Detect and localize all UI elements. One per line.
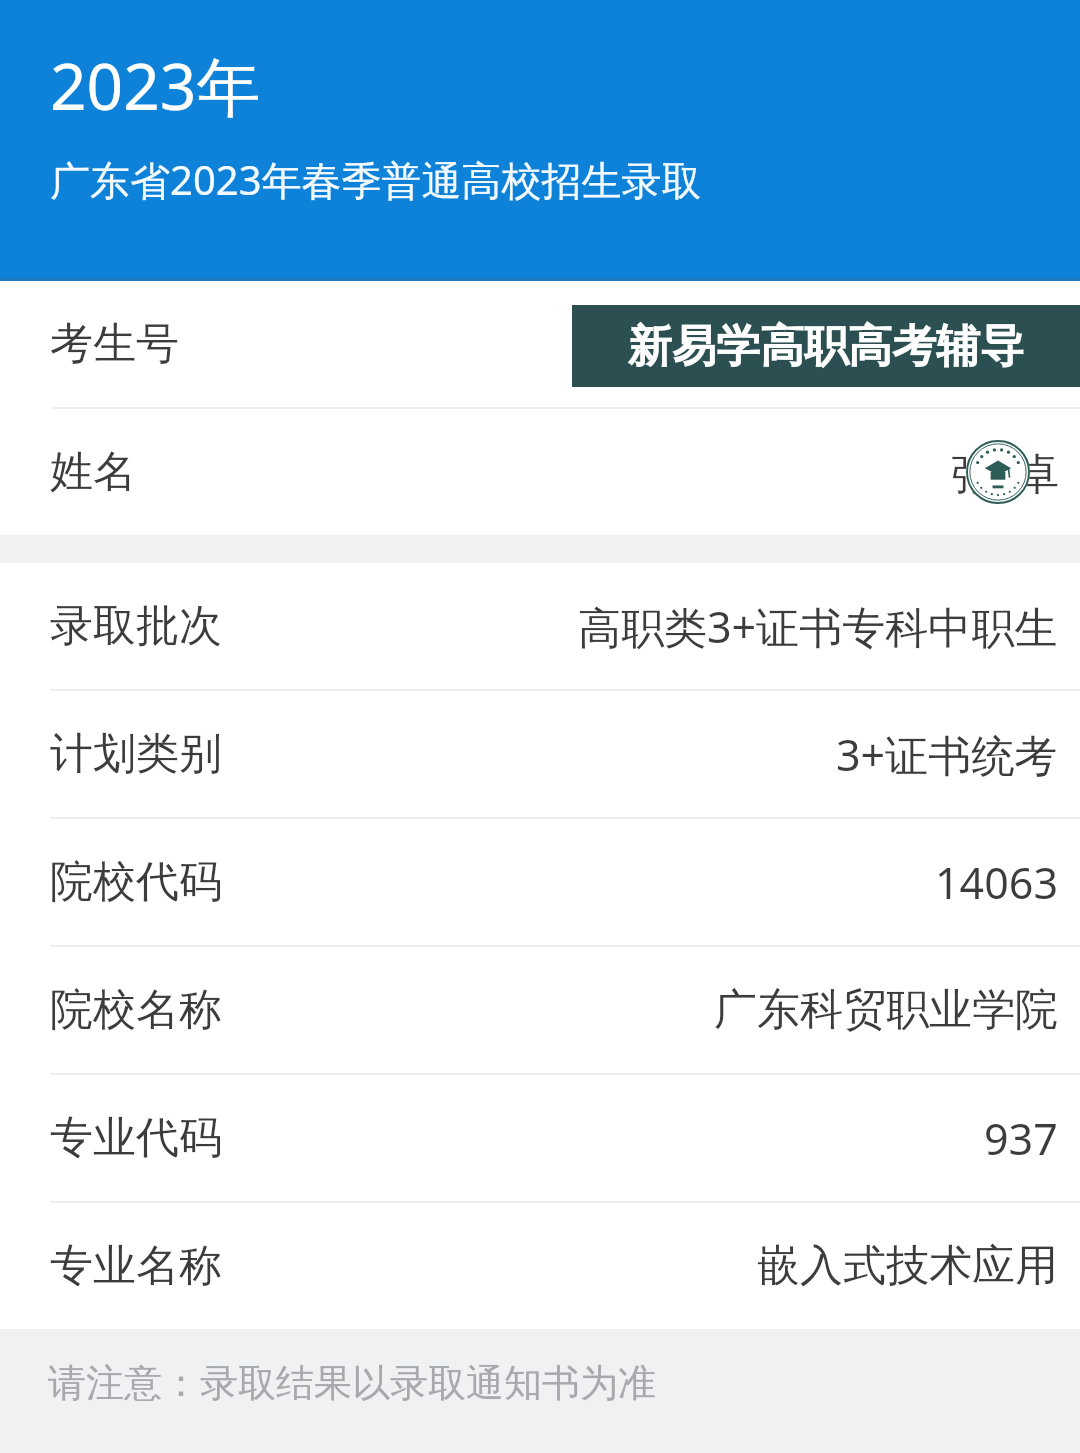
- other: School seal: [966, 440, 1030, 504]
- button[interactable]: 院校名称: [0, 947, 1080, 1073]
- staticText: 张 卓: [951, 443, 1060, 502]
- staticText: 广东科贸职业学院: [714, 983, 1058, 1037]
- staticText: 高职类3+证书专科中职生: [578, 597, 1058, 656]
- button[interactable]: 姓名: [0, 409, 1080, 535]
- button[interactable]: 专业代码: [0, 1075, 1080, 1201]
- staticText: 专业代码: [50, 1111, 222, 1165]
- button[interactable]: 院校代码: [0, 819, 1080, 945]
- button[interactable]: 考生号: [0, 281, 1080, 407]
- staticText: 计划类别: [50, 727, 222, 781]
- button[interactable]: 录取批次: [0, 563, 1080, 689]
- staticText: 937: [984, 1109, 1058, 1168]
- staticText: 新易学高职高考辅导: [628, 319, 1024, 374]
- button[interactable]: 专业名称: [0, 1203, 1080, 1329]
- staticText: 录取批次: [50, 599, 222, 653]
- staticText: 嵌入式技术应用: [757, 1239, 1058, 1293]
- staticText: 考生号: [50, 317, 179, 371]
- staticText: 3+证书统考: [836, 725, 1058, 784]
- staticText: 14063: [935, 853, 1058, 912]
- staticText: 院校代码: [50, 855, 222, 909]
- button[interactable]: 计划类别: [0, 691, 1080, 817]
- staticText: 姓名: [50, 445, 136, 499]
- staticText: 广东省2023年春季普通高校招生录取: [50, 152, 702, 207]
- staticText: 2023年: [50, 42, 261, 129]
- staticText: 请注意：录取结果以录取通知书为准: [48, 1359, 656, 1407]
- staticText: 院校名称: [50, 983, 222, 1037]
- staticText: 专业名称: [50, 1239, 222, 1293]
